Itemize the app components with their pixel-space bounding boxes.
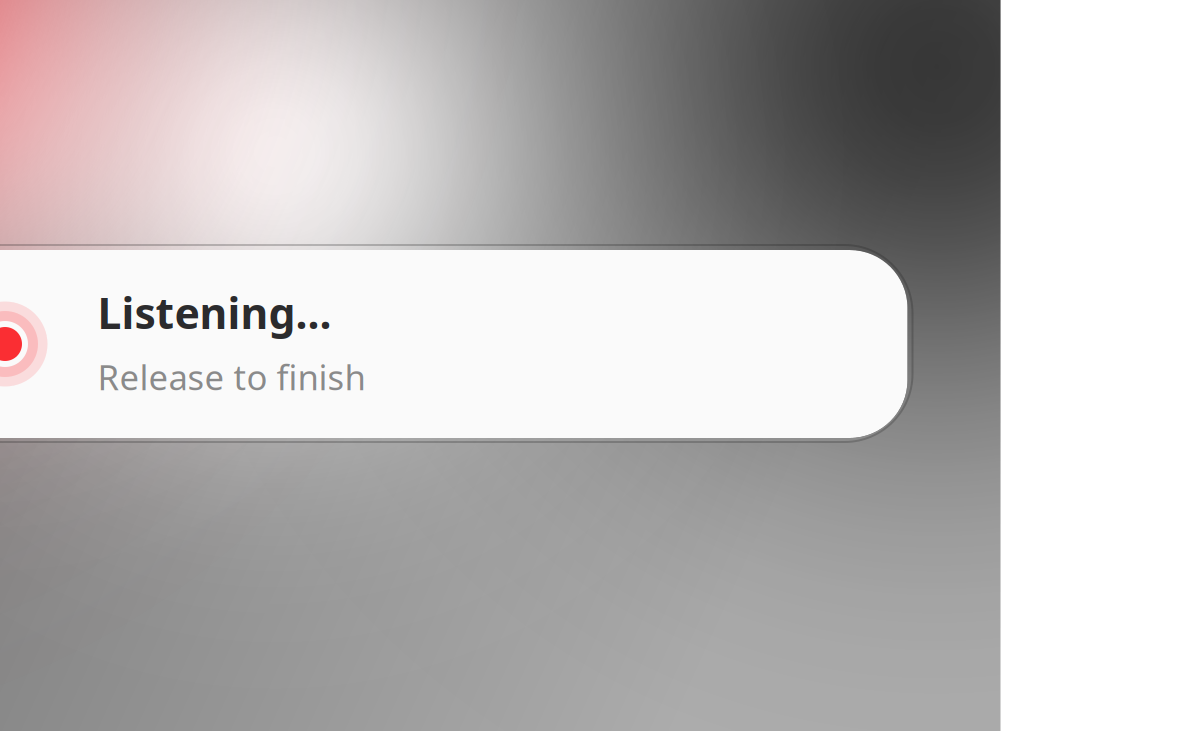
staticText: Release to finish (97, 354, 365, 400)
button[interactable]: Listening... (0, 250, 907, 438)
staticText: Listening... (97, 284, 331, 341)
